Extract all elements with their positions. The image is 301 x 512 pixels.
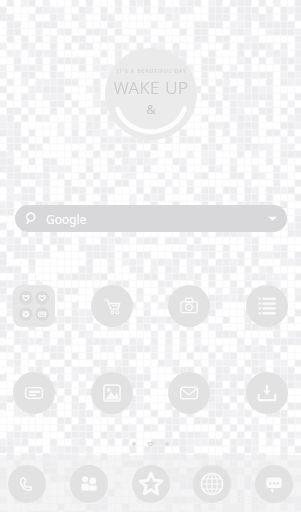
button[interactable]: Mail [168,372,210,414]
staticText: & [146,100,156,118]
button[interactable]: Shopping [91,285,133,327]
button[interactable]: Contacts [70,465,108,503]
button[interactable]: Favorites [132,465,170,503]
button[interactable]: Wallet [13,372,55,414]
button[interactable]: Messages [255,465,293,503]
staticText: Google [46,211,87,227]
button[interactable]: Camera [168,285,210,327]
staticText: WAKE UP [113,76,189,99]
button[interactable]: Tasks [246,285,288,327]
button[interactable]: Google [15,205,287,232]
button[interactable]: Browser [193,465,231,503]
button[interactable]: Favorites folder [13,285,55,327]
staticText: IT'S A BEAUTIFUL DAY [116,67,187,74]
button[interactable]: Downloads [246,372,288,414]
button[interactable]: Wake up widget [105,48,197,140]
button[interactable]: Gallery [91,372,133,414]
button[interactable]: Phone [8,465,46,503]
